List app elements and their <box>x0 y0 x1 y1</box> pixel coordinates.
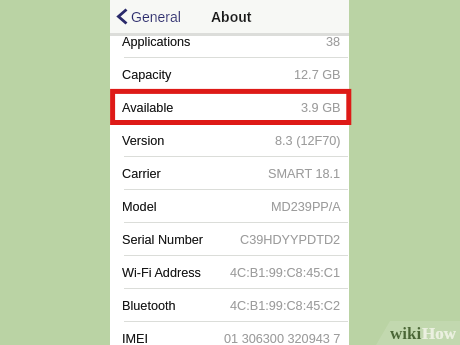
staticText: 01 306300 320943 7 <box>224 332 341 345</box>
other: Back <box>117 8 128 25</box>
staticText: 4C:B1:99:C8:45:C2 <box>230 299 341 313</box>
staticText: Serial Number <box>122 233 204 247</box>
staticText: Applications <box>122 35 191 49</box>
staticText: Carrier <box>122 167 161 181</box>
staticText: 12.7 GB <box>294 68 341 82</box>
button[interactable]: Back <box>117 8 181 25</box>
button[interactable]: Serial Number <box>110 223 349 256</box>
staticText: IMEI <box>122 332 149 345</box>
button[interactable]: Carrier <box>110 157 349 190</box>
staticText: How <box>422 324 456 343</box>
button[interactable]: IMEI <box>110 322 349 345</box>
staticText: Model <box>122 200 157 214</box>
staticText: SMART 18.1 <box>268 167 341 181</box>
staticText: 3.9 GB <box>301 101 341 115</box>
staticText: MD239PP/A <box>271 200 341 214</box>
staticText: Bluetooth <box>122 299 176 313</box>
staticText: wiki <box>390 324 422 343</box>
staticText: C39HDYYPDTD2 <box>240 233 341 247</box>
button[interactable]: Version <box>110 124 349 157</box>
staticText: Version <box>122 134 165 148</box>
staticText: Bluetooth <box>122 299 176 313</box>
staticText: Applications <box>122 35 191 49</box>
staticText: Capacity <box>122 68 172 82</box>
staticText: 4C:B1:99:C8:45:C1 <box>230 266 341 280</box>
staticText: 38 <box>326 35 341 49</box>
button[interactable]: Capacity <box>110 58 349 91</box>
staticText: IMEI <box>122 332 149 345</box>
staticText: Available <box>122 101 174 115</box>
staticText: General <box>131 9 181 25</box>
staticText: Wi-Fi Address <box>122 266 201 280</box>
staticText: About <box>211 9 252 25</box>
button[interactable]: Wi-Fi Address <box>110 256 349 289</box>
button[interactable]: Applications <box>110 25 349 58</box>
button[interactable]: Available <box>110 91 349 124</box>
staticText: Capacity <box>122 68 172 82</box>
staticText: Carrier <box>122 167 161 181</box>
staticText: Serial Number <box>122 233 204 247</box>
staticText: Version <box>122 134 165 148</box>
staticText: 8.3 (12F70) <box>275 134 341 148</box>
staticText: Wi-Fi Address <box>122 266 201 280</box>
button[interactable]: Bluetooth <box>110 289 349 322</box>
staticText: Model <box>122 200 157 214</box>
staticText: Available <box>122 101 174 115</box>
button[interactable]: Model <box>110 190 349 223</box>
